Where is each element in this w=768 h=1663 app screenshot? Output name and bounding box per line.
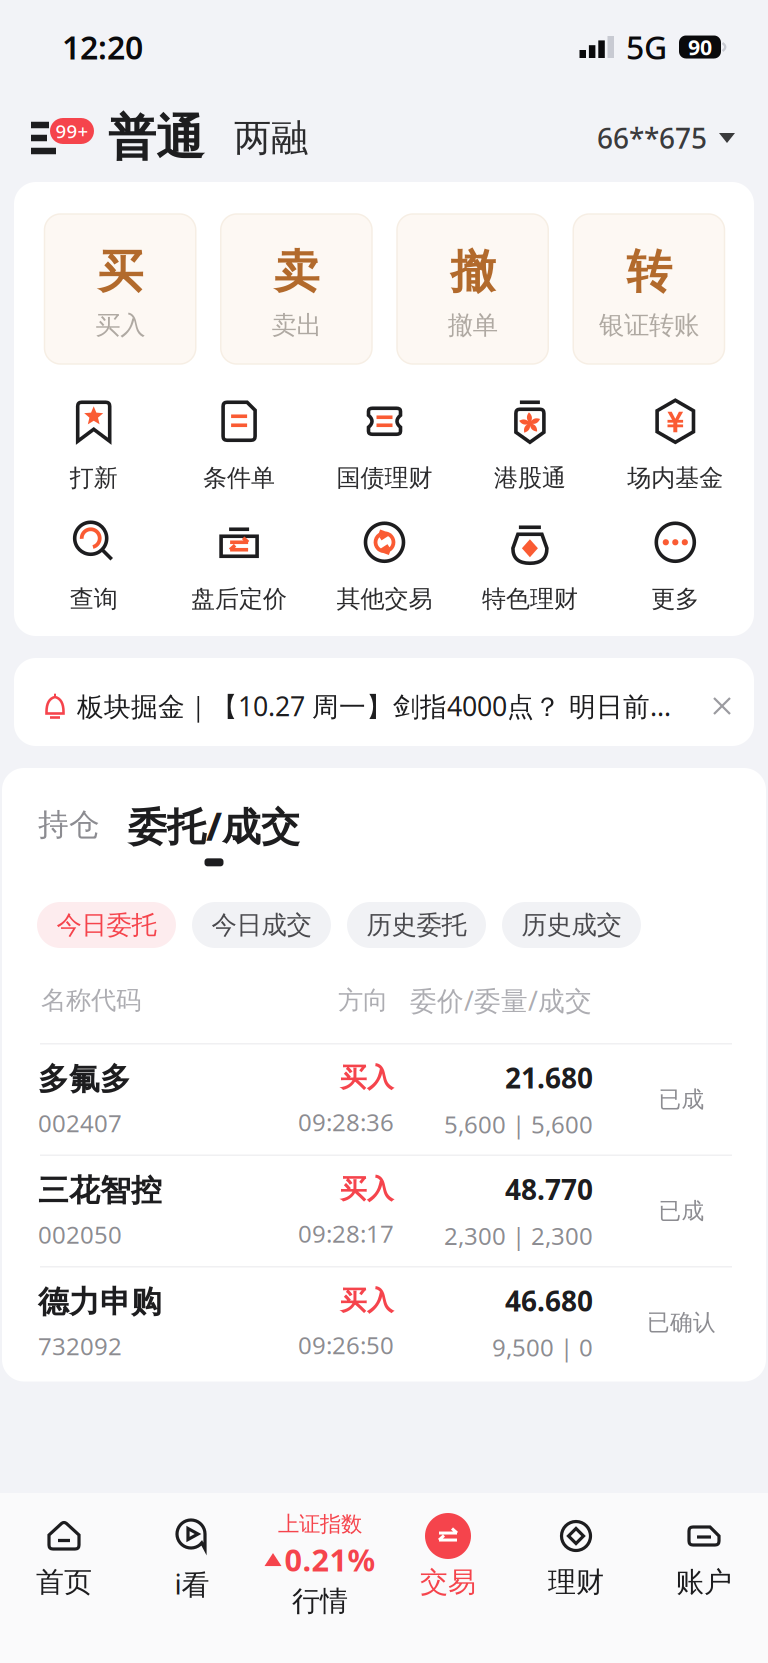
staticText: 更多 [651,584,699,614]
staticText: 0.21% [284,1539,375,1580]
button[interactable]: 三花智控 [2,1156,768,1266]
staticText: 买入 [340,1284,394,1317]
button[interactable]: 委托/成交 [128,800,300,898]
staticText: 交易 [420,1565,476,1599]
staticText: 今日委托 [56,909,156,940]
button[interactable]: 特色理财 [457,521,603,611]
staticText: 首页 [36,1565,92,1599]
button[interactable]: 上证指数 [256,1493,384,1663]
button[interactable]: 更多 [603,521,748,611]
button[interactable]: 盘后定价 [166,521,312,611]
staticText: 已确认 [647,1309,716,1336]
staticText: 09:28:17 [298,1217,394,1249]
staticText: 48.770 [505,1170,593,1208]
staticText: 行情 [292,1584,348,1618]
staticText: 两融 [234,115,308,161]
staticText: 打新 [70,463,118,493]
staticText: 002407 [38,1107,122,1139]
staticText: 上证指数 [278,1511,362,1537]
staticText: 三花智控 [38,1172,162,1209]
staticText: 买入 [340,1173,394,1205]
staticText: 002050 [38,1218,122,1250]
staticText: 2,300 | 2,300 [444,1220,593,1252]
staticText: 已成 [658,1086,704,1113]
staticText: 历史成交 [521,909,621,940]
button[interactable]: 撤 [397,214,548,364]
button[interactable]: Menu, 99 plus notifications [28,114,94,162]
button[interactable]: 港股通 [457,400,603,490]
staticText: 5G [626,26,667,68]
staticText: 银证转账 [599,310,699,341]
button[interactable]: 66**675 [597,119,735,157]
button[interactable]: 历史成交 [502,902,641,948]
staticText: 历史委托 [366,909,466,940]
button[interactable]: 打新 [21,400,166,490]
staticText: 方向 [338,985,388,1016]
button[interactable]: 其他交易 [312,521,457,611]
staticText: 其他交易 [336,584,432,614]
staticText: i看 [174,1565,209,1602]
staticText: 多氟多 [38,1060,131,1098]
button[interactable]: 场内基金 [603,400,748,490]
staticText: 国债理财 [336,463,432,493]
staticText: 普通 [108,108,204,167]
button[interactable]: 今日成交 [192,902,331,948]
staticText: 委价/委量/成交 [410,983,592,1018]
staticText: 90 [688,33,712,61]
button[interactable]: 首页 [0,1493,128,1663]
staticText: 理财 [548,1565,604,1599]
staticText: 持仓 [38,806,100,844]
button[interactable]: 持仓 [38,800,100,844]
staticText: 德力申购 [38,1283,162,1321]
staticText: 撤单 [448,310,498,341]
staticText: 买入 [95,310,145,341]
button[interactable]: 德力申购 [2,1267,768,1377]
staticText: 12:20 [62,26,143,68]
button[interactable]: i看 [128,1493,256,1663]
staticText: 撤 [450,244,495,300]
button[interactable]: 账户 [640,1493,768,1663]
button[interactable]: 交易 [384,1493,512,1663]
staticText: 查询 [70,584,118,614]
staticText: 账户 [676,1565,732,1599]
staticText: 买 [98,244,143,300]
staticText: 转 [626,244,671,300]
staticText: 46.680 [505,1282,593,1319]
button[interactable]: 普通 [108,108,204,167]
staticText: 条件单 [203,463,275,493]
button[interactable]: 查询 [21,521,166,611]
staticText: 卖出 [271,310,321,341]
staticText: 今日成交 [211,909,311,940]
button[interactable]: Close [699,675,745,729]
button[interactable]: 历史委托 [347,902,486,948]
button[interactable]: 条件单 [166,400,312,490]
staticText: 买入 [340,1061,394,1094]
button[interactable]: 多氟多 [2,1044,768,1154]
staticText: 板块掘金｜【10.27 周一】剑指4000点？ 明日前… [77,688,671,724]
staticText: 特色理财 [482,584,578,614]
staticText: 09:26:50 [298,1329,394,1361]
button[interactable]: 理财 [512,1493,640,1663]
staticText: 已成 [658,1197,704,1225]
staticText: 委托/成交 [128,800,300,851]
staticText: 港股通 [494,463,566,493]
staticText: 732092 [38,1330,122,1362]
staticText: 66**675 [597,119,707,157]
button[interactable]: 转 [573,214,724,364]
button[interactable]: 国债理财 [312,400,457,490]
staticText: 名称代码 [41,985,141,1016]
staticText: 9,500 | 0 [492,1331,593,1363]
staticText: 盘后定价 [191,584,287,614]
staticText: 21.680 [505,1059,593,1096]
staticText: 5,600 | 5,600 [444,1108,593,1140]
button[interactable]: 今日委托 [37,902,176,948]
staticText: 卖 [274,244,319,300]
staticText: 09:28:36 [298,1106,394,1138]
button[interactable]: 两融 [234,115,308,161]
staticText: 场内基金 [627,463,723,493]
staticText: 99+ [55,119,88,143]
button[interactable]: 卖 [221,214,372,364]
button[interactable]: 买 [44,214,196,364]
